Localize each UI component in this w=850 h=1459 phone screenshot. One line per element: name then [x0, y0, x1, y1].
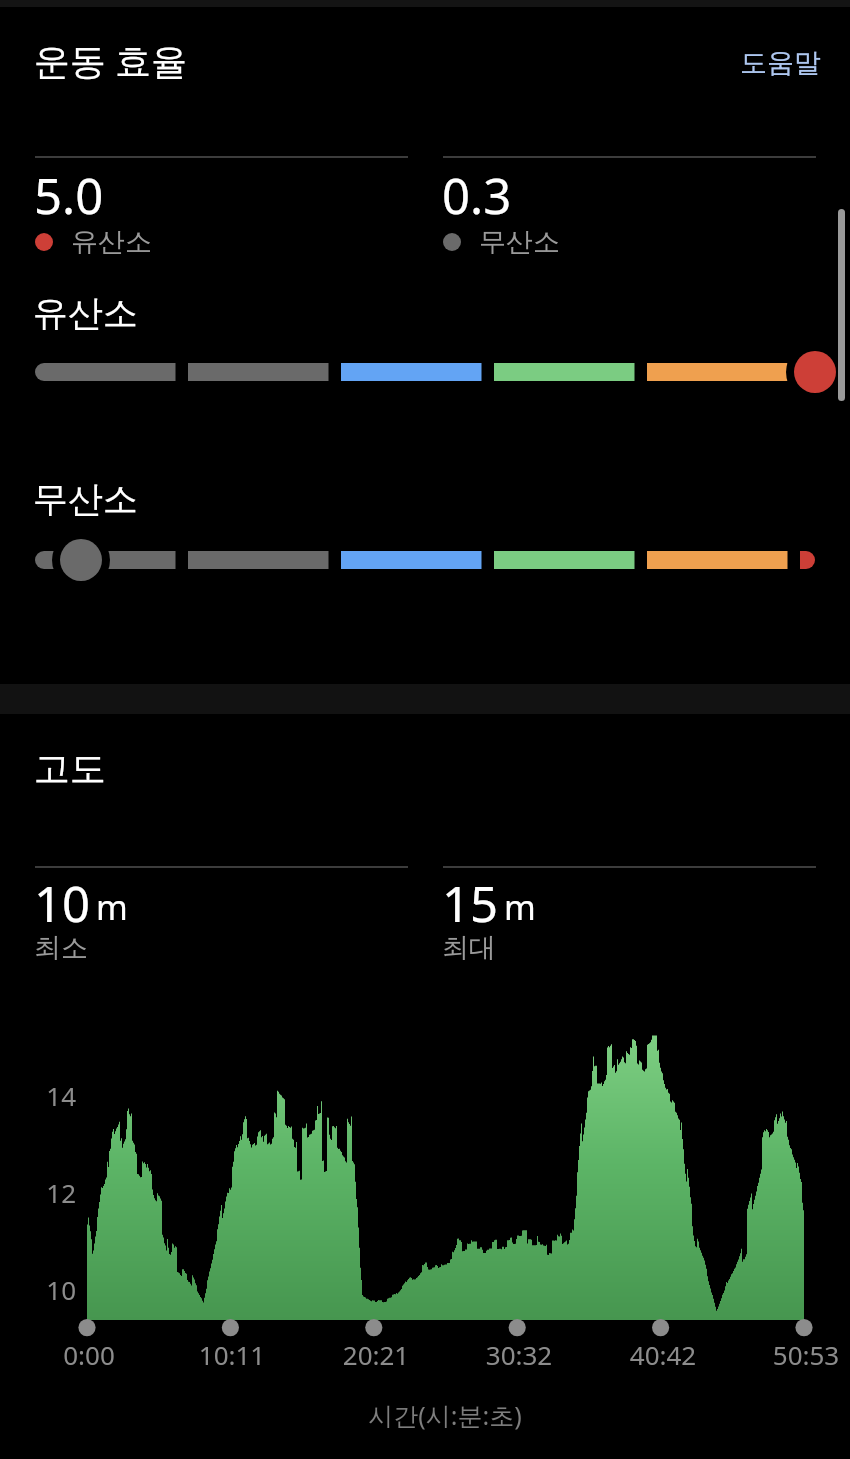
staticText: 14: [0, 1078, 76, 1113]
staticText: 10: [34, 870, 91, 937]
staticText: 40:42: [593, 1337, 733, 1372]
button[interactable]: 도움말: [718, 24, 836, 84]
button[interactable]: 운동 효율: [20, 24, 220, 84]
staticText: 30:32: [449, 1337, 589, 1372]
staticText: 10: [0, 1272, 76, 1307]
staticText: 무산소: [33, 477, 138, 521]
staticText: 무산소: [479, 225, 560, 259]
staticText: 최대: [442, 931, 496, 965]
staticText: 10:11: [162, 1337, 302, 1372]
staticText: 0.3: [442, 162, 512, 229]
staticText: 20:21: [306, 1337, 446, 1372]
staticText: 5.0: [34, 162, 104, 229]
staticText: 운동 효율: [34, 36, 188, 84]
staticText: 12: [0, 1175, 76, 1210]
other: Scroll position: [838, 209, 845, 401]
staticText: 고도: [34, 746, 106, 791]
staticText: 50:53: [736, 1337, 850, 1372]
staticText: 시간(시:분:초): [345, 1398, 545, 1432]
button[interactable]: 유산소: [34, 225, 152, 259]
staticText: 도움말: [740, 46, 821, 80]
staticText: 유산소: [71, 225, 152, 259]
staticText: 최소: [34, 931, 88, 965]
staticText: m: [504, 884, 536, 930]
staticText: 15: [442, 870, 499, 937]
button[interactable]: 무산소: [442, 225, 560, 259]
staticText: m: [96, 884, 128, 930]
staticText: 0:00: [19, 1337, 159, 1372]
staticText: 유산소: [33, 291, 138, 335]
